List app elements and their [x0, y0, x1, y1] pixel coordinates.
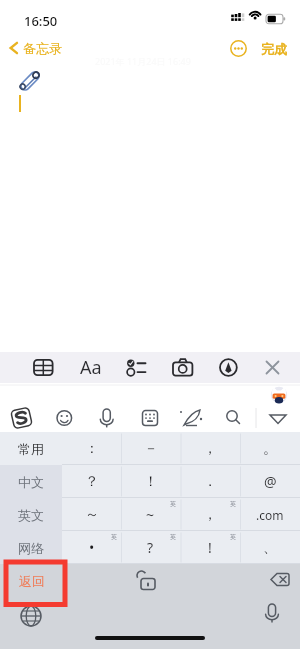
button[interactable]: 完成 — [261, 41, 287, 57]
button[interactable]: ? — [121, 531, 180, 564]
button[interactable]: 英文 — [0, 498, 62, 531]
staticText: @ — [264, 472, 277, 491]
button[interactable]: @ — [240, 465, 300, 498]
button[interactable]: 、 — [240, 531, 300, 564]
staticText: 常用 — [18, 441, 44, 457]
staticText: 英 — [111, 533, 117, 541]
staticText: 返回 — [19, 573, 45, 589]
staticText: 备忘录 — [23, 40, 62, 56]
button[interactable]: ？ — [62, 465, 121, 498]
staticText: ， — [203, 440, 217, 458]
button[interactable]: ! — [180, 531, 240, 564]
staticText: ， — [203, 506, 217, 524]
button[interactable]: ～ — [62, 498, 121, 531]
button[interactable]: More — [230, 40, 247, 57]
button[interactable]: 返回 — [4, 565, 60, 596]
staticText: 英文 — [18, 507, 44, 523]
button[interactable]: • — [62, 531, 121, 564]
staticText: ～ — [85, 506, 99, 524]
staticText: .com — [256, 507, 284, 523]
staticText: 英 — [170, 500, 176, 508]
staticText: ? — [147, 538, 154, 557]
button[interactable]: ． — [180, 465, 240, 498]
button[interactable]: 。 — [240, 432, 300, 465]
button[interactable]: .com — [240, 498, 300, 531]
staticText: Aa — [80, 355, 102, 380]
button[interactable]: ~ — [121, 498, 180, 531]
button[interactable]: 网络 — [0, 531, 62, 564]
staticText: • — [89, 538, 95, 557]
staticText: 、 — [263, 539, 277, 557]
staticText: ！ — [144, 473, 158, 491]
staticText: － — [144, 440, 158, 458]
button[interactable]: － — [121, 432, 180, 465]
staticText: 英 — [230, 500, 236, 508]
button[interactable]: ， — [180, 498, 240, 531]
staticText: ． — [203, 473, 217, 491]
staticText: ？ — [85, 473, 99, 491]
button[interactable]: ： — [62, 432, 121, 465]
staticText: ： — [85, 440, 99, 458]
staticText: 16:50 — [24, 12, 58, 30]
staticText: 英 — [170, 533, 176, 541]
staticText: 英 — [230, 533, 236, 541]
button[interactable]: 常用 — [0, 432, 62, 465]
staticText: 中文 — [18, 474, 44, 490]
button[interactable]: 中文 — [0, 465, 62, 498]
button[interactable]: Switch language — [16, 601, 46, 631]
staticText: ! — [208, 538, 212, 557]
button[interactable]: ！ — [121, 465, 180, 498]
staticText: 。 — [263, 440, 277, 458]
staticText: 网络 — [18, 540, 44, 556]
button[interactable]: 备忘录 — [8, 40, 62, 56]
button[interactable]: Voice input — [259, 600, 285, 626]
staticText: ~ — [146, 505, 155, 524]
button[interactable]: ， — [180, 432, 240, 465]
